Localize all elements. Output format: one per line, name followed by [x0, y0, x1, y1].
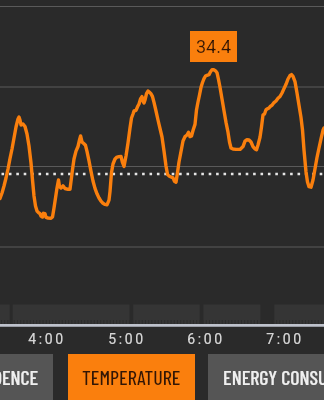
staticText: ENERGY CONSUMPTION	[223, 365, 324, 389]
button[interactable]: TEMPERATURE	[68, 354, 195, 400]
staticText: 5:00	[97, 331, 157, 347]
staticText: 4:00	[17, 331, 77, 347]
button[interactable]: ENERGY CONSUMPTION	[208, 354, 324, 400]
staticText: 6:00	[176, 331, 236, 347]
staticText: TEMPERATURE	[82, 365, 181, 389]
staticText: CADENCE	[0, 365, 39, 389]
staticText: 34.4	[196, 36, 232, 57]
button[interactable]: CADENCE	[0, 354, 53, 400]
staticText: 7:00	[255, 331, 315, 347]
button[interactable]: 34.4	[190, 31, 237, 62]
